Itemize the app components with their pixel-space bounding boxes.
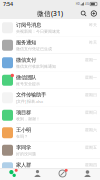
button[interactable]: Me	[75, 168, 100, 180]
staticText: HD	[76, 2, 80, 6]
staticText: 家人群	[16, 162, 31, 168]
button[interactable]: 项目群	[0, 106, 100, 124]
button[interactable]: Add	[89, 8, 99, 19]
button[interactable]: Discover	[50, 168, 75, 180]
staticText: 王小明	[16, 127, 31, 133]
button[interactable]: 家人群	[0, 159, 100, 176]
staticText: 星期四	[85, 162, 97, 167]
staticText: 星期日	[85, 110, 97, 115]
button[interactable]: 微信团队	[0, 71, 100, 89]
staticText: 7:54	[3, 0, 13, 8]
staticText: 账号安全提示	[16, 81, 40, 86]
button[interactable]: 王小明	[0, 124, 100, 141]
staticText: 收到，谢谢！	[16, 116, 40, 121]
staticText: 微信团队	[16, 74, 36, 81]
staticText: 微信支付收款到账通知	[16, 64, 56, 69]
staticText: 昨天	[89, 22, 97, 27]
staticText: 星期六	[85, 127, 97, 132]
staticText: 央视新闻：今日要闻速览	[16, 29, 60, 34]
staticText: 服务通知	[16, 39, 36, 46]
button[interactable]: Contacts	[25, 168, 50, 180]
button[interactable]: 文件传输助手	[0, 89, 100, 106]
staticText: 微信支付	[16, 57, 36, 63]
staticText: 在吗？	[16, 134, 28, 139]
staticText: 好的没问题	[16, 151, 36, 156]
staticText: 4G	[85, 2, 89, 6]
staticText: 李同学	[16, 144, 31, 151]
staticText: 星期一	[85, 75, 97, 80]
button[interactable]: Chats	[0, 168, 25, 180]
staticText: 星期日	[85, 92, 97, 97]
staticText: 文件传输助手	[16, 91, 46, 98]
button[interactable]: Search	[79, 8, 89, 18]
staticText: 微信(31)	[37, 9, 63, 18]
button[interactable]: 订阅号消息	[0, 19, 100, 36]
staticText: 星期五	[85, 145, 97, 150]
staticText: 微信支付凭证已生成	[16, 46, 52, 51]
staticText: [文件] 报表.xlsx	[16, 99, 43, 104]
button[interactable]: 服务通知	[0, 36, 100, 54]
staticText: 星期一	[85, 57, 97, 62]
staticText: 订阅号消息	[16, 22, 41, 28]
button[interactable]: 李同学	[0, 141, 100, 159]
staticText: 项目群	[16, 109, 31, 116]
button[interactable]: 微信支付	[0, 54, 100, 71]
staticText: 晚安	[16, 169, 24, 174]
staticText: 昨天	[89, 40, 97, 45]
